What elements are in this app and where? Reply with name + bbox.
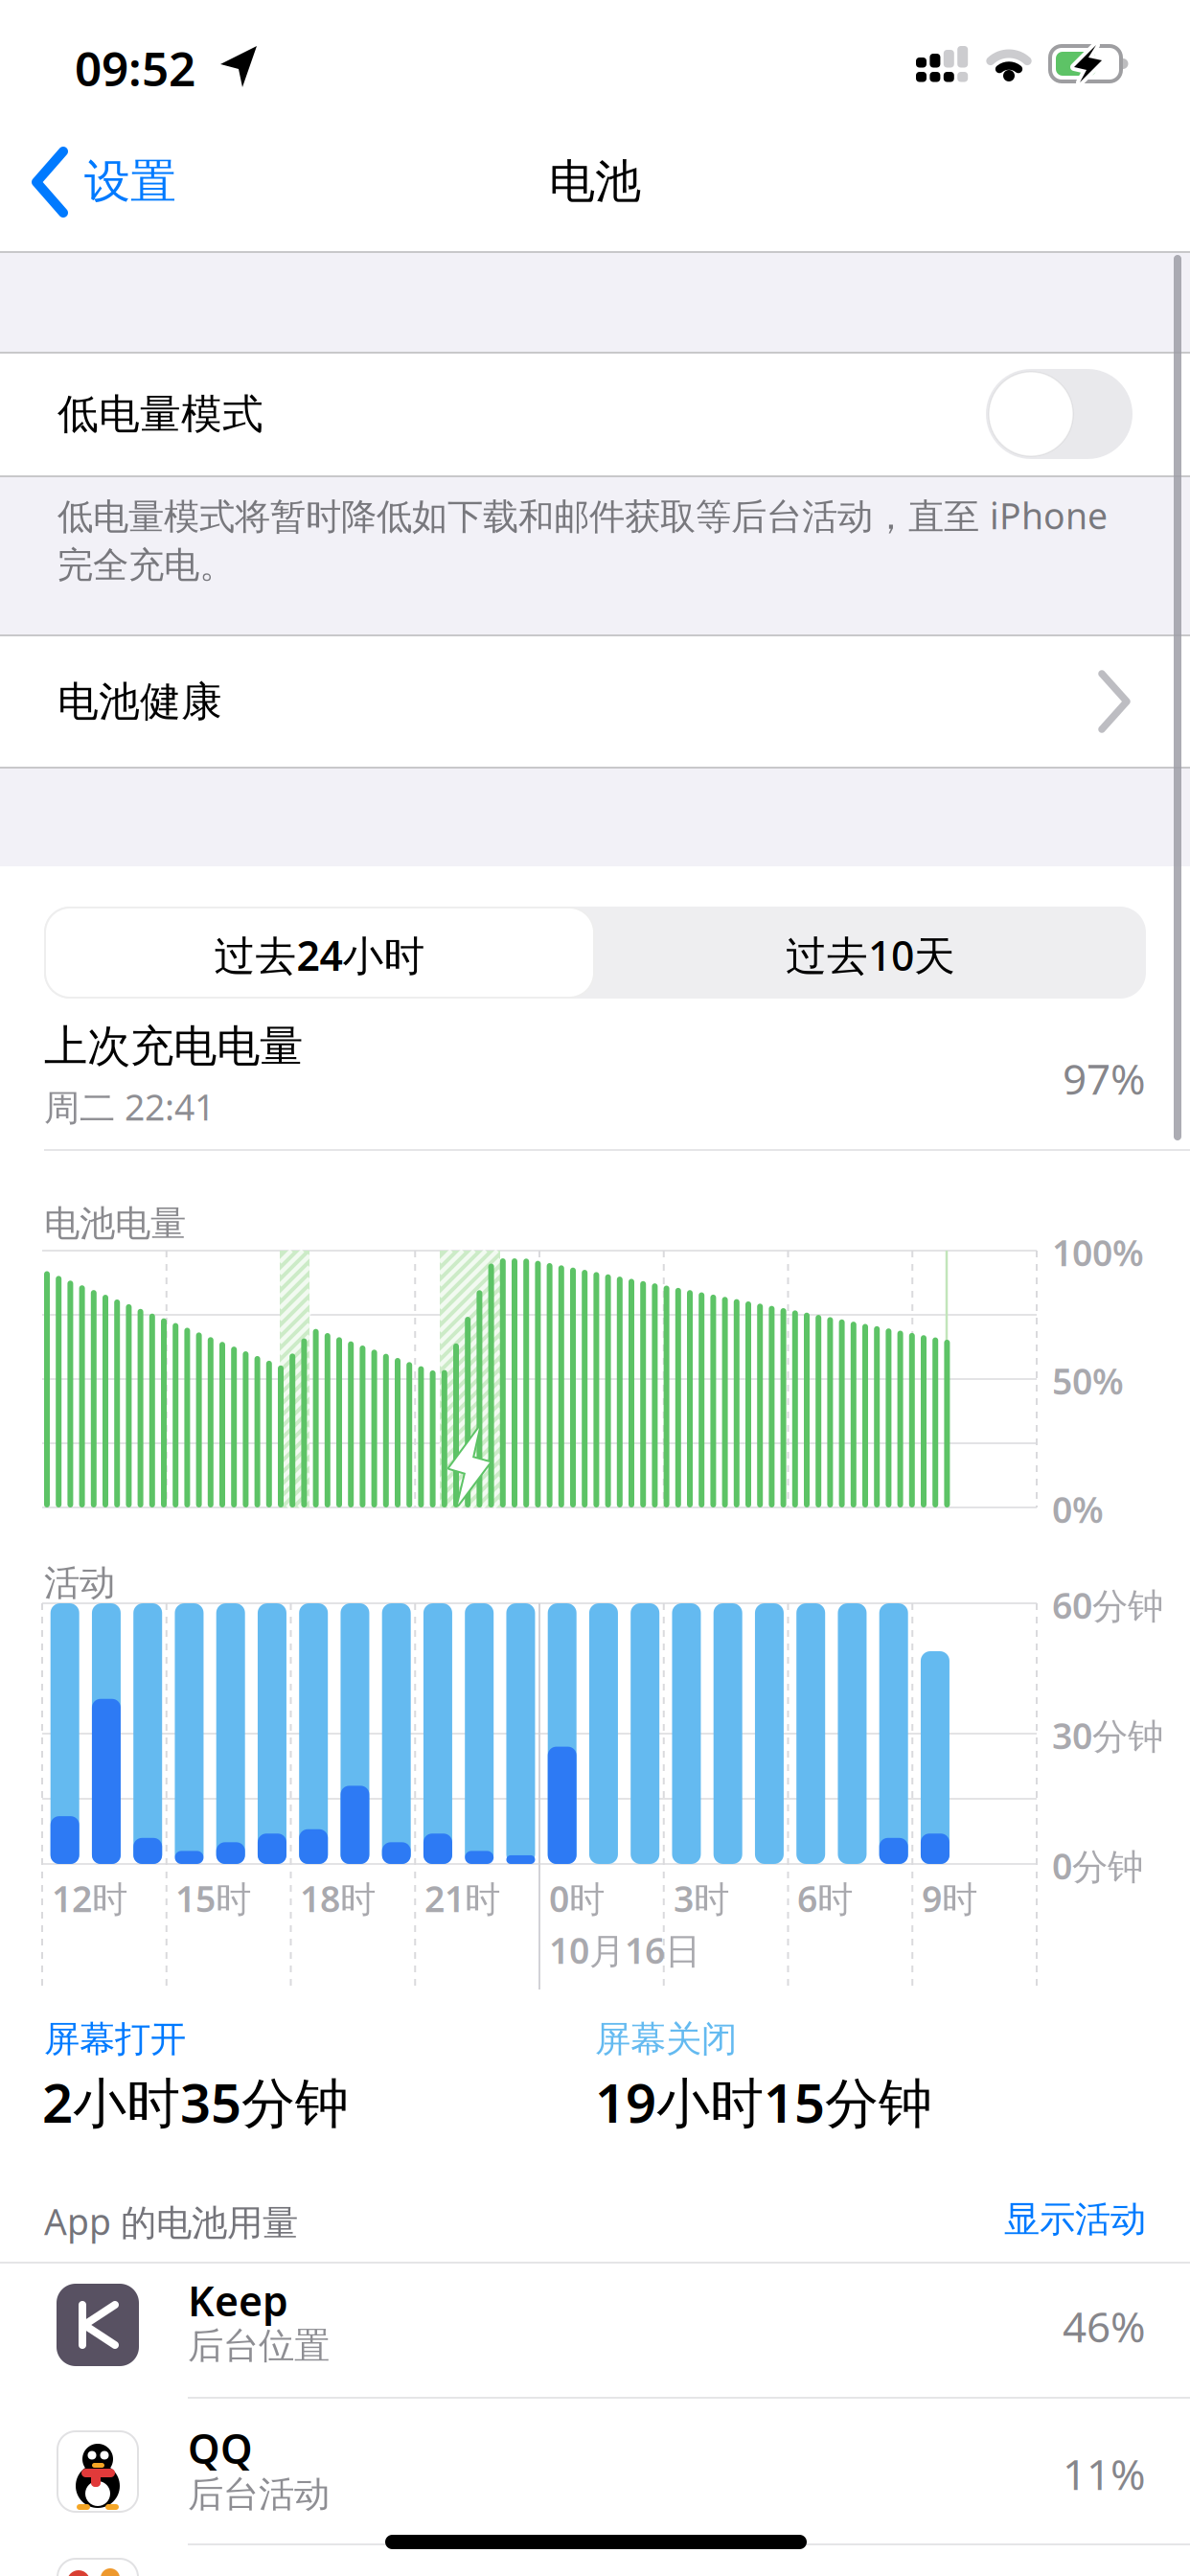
staticText: 6时: [797, 1874, 853, 1922]
staticText: 电池健康: [57, 677, 222, 727]
staticText: 60分钟: [1052, 1581, 1163, 1629]
staticText: 活动: [44, 1561, 115, 1605]
staticText: 15时: [175, 1874, 251, 1922]
staticText: 显示活动: [1004, 2197, 1146, 2241]
staticText: 过去10天: [786, 928, 955, 982]
staticText: 过去24小时: [214, 928, 425, 982]
staticText: 设置: [84, 153, 176, 210]
staticText: Keep: [188, 2273, 288, 2328]
staticText: 周二 22:41: [44, 1083, 215, 1130]
staticText: 11%: [1063, 2446, 1146, 2502]
staticText: 0%: [1052, 1485, 1104, 1533]
staticText: 屏幕关闭: [595, 2017, 737, 2061]
staticText: App 的电池用量: [44, 2197, 298, 2245]
staticText: 电池电量: [44, 1202, 186, 1246]
staticText: 100%: [1052, 1229, 1144, 1276]
staticText: 19小时15分钟: [595, 2066, 932, 2137]
staticText: 9时: [922, 1874, 977, 1922]
staticText: 3时: [674, 1874, 729, 1922]
staticText: 30分钟: [1052, 1712, 1163, 1759]
staticText: QQ: [188, 2421, 253, 2475]
staticText: 0时: [549, 1874, 605, 1922]
staticText: 12时: [52, 1874, 127, 1922]
staticText: 50%: [1052, 1357, 1124, 1405]
staticText: 低电量模式将暂时降低如下载和邮件获取等后台活动，直至 iPhone: [57, 492, 1108, 539]
staticText: 屏幕打开: [44, 2017, 186, 2061]
staticText: 2小时35分钟: [42, 2066, 349, 2137]
staticText: 10月16日: [549, 1926, 700, 1974]
staticText: 18时: [300, 1874, 376, 1922]
staticText: 电池: [549, 153, 641, 210]
staticText: 低电量模式: [57, 389, 263, 439]
staticText: 09:52: [75, 36, 195, 99]
staticText: 46%: [1063, 2298, 1146, 2354]
staticText: 后台活动: [188, 2472, 330, 2516]
staticText: 0分钟: [1052, 1842, 1143, 1889]
staticText: 97%: [1063, 1050, 1146, 1106]
staticText: 完全充电。: [57, 543, 235, 587]
staticText: 后台位置: [188, 2324, 330, 2368]
staticText: 21时: [424, 1874, 500, 1922]
staticText: 上次充电电量: [44, 1020, 303, 1073]
